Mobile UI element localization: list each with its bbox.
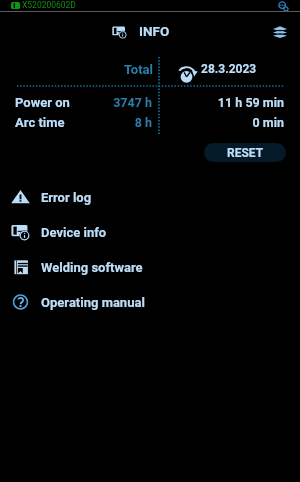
staticText: Device info xyxy=(41,225,107,240)
staticText: Error log xyxy=(41,190,92,205)
staticText: Power on xyxy=(15,95,70,110)
button[interactable]: INFO xyxy=(104,21,177,43)
button[interactable]: Operating manual xyxy=(0,289,300,315)
staticText: 28.3.2023 xyxy=(201,62,257,76)
button[interactable]: Welding software xyxy=(0,254,300,280)
staticText: INFO xyxy=(139,23,170,39)
button[interactable]: RESET xyxy=(204,143,286,162)
staticText: 0 min xyxy=(184,115,284,130)
staticText: 3747 h xyxy=(82,95,152,110)
button[interactable]: Layers xyxy=(268,20,292,44)
staticText: 11 h 59 min xyxy=(184,95,284,110)
staticText: X520200602D xyxy=(22,0,76,10)
button[interactable]: Error log xyxy=(0,184,300,210)
button[interactable]: Device info xyxy=(0,219,300,245)
staticText: Total xyxy=(53,62,153,77)
staticText: Operating manual xyxy=(41,295,145,310)
staticText: Welding software xyxy=(41,260,143,275)
staticText: RESET xyxy=(227,146,264,160)
staticText: Arc time xyxy=(15,115,65,130)
staticText: 8 h xyxy=(82,115,152,130)
